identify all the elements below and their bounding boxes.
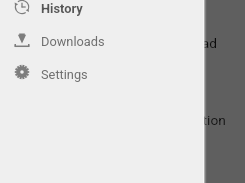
staticText: Settings bbox=[41, 67, 88, 82]
staticText: Download bbox=[156, 35, 217, 51]
button[interactable]: History bbox=[0, 0, 203, 23]
staticText: Downloads bbox=[41, 34, 105, 49]
button[interactable]: Settings bbox=[0, 56, 203, 88]
staticText: History bbox=[41, 1, 83, 16]
button[interactable]: Downloads bbox=[0, 24, 203, 56]
staticText: Notification bbox=[155, 112, 226, 128]
